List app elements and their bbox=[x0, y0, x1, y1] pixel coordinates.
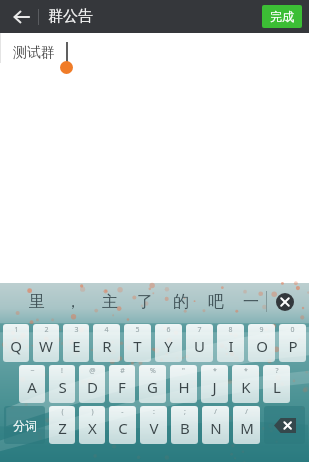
staticText: P bbox=[288, 336, 298, 356]
staticText: # bbox=[120, 366, 125, 376]
button[interactable]: ) bbox=[79, 406, 105, 444]
button[interactable]: Backspace bbox=[264, 406, 305, 444]
staticText: 里 bbox=[29, 292, 45, 312]
staticText: * bbox=[213, 366, 217, 376]
staticText: Z bbox=[58, 418, 67, 438]
staticText: T bbox=[133, 336, 142, 356]
button[interactable]: 5 bbox=[124, 324, 151, 362]
staticText: V bbox=[149, 418, 159, 438]
staticText: A bbox=[27, 377, 37, 397]
button[interactable]: / bbox=[233, 406, 260, 444]
button[interactable]: Close candidates bbox=[276, 293, 294, 311]
button[interactable]: 4 bbox=[93, 324, 120, 362]
staticText: 4 bbox=[104, 325, 109, 335]
staticText: J bbox=[212, 377, 217, 397]
staticText: S bbox=[58, 377, 67, 397]
staticText: K bbox=[241, 377, 251, 397]
button[interactable]: 2 bbox=[33, 324, 59, 362]
staticText: ? bbox=[275, 366, 279, 376]
staticText: Q bbox=[10, 336, 22, 356]
button[interactable]: 分词 bbox=[4, 406, 45, 444]
button[interactable]: * bbox=[232, 365, 259, 403]
staticText: X bbox=[88, 418, 97, 438]
button[interactable]: ? bbox=[263, 365, 290, 403]
staticText: N bbox=[210, 418, 222, 438]
staticText: E bbox=[72, 336, 81, 356]
staticText: ) bbox=[91, 407, 94, 417]
button[interactable]: # bbox=[109, 365, 135, 403]
button[interactable]: ! bbox=[49, 365, 75, 403]
button[interactable]: % bbox=[139, 365, 166, 403]
staticText: 吧 bbox=[208, 292, 224, 312]
button[interactable]: 的 bbox=[168, 289, 194, 315]
staticText: 的 bbox=[173, 292, 189, 312]
staticText: ( bbox=[61, 407, 64, 417]
button[interactable]: 0 bbox=[279, 324, 306, 362]
staticText: 6 bbox=[166, 325, 171, 335]
staticText: G bbox=[147, 377, 158, 397]
button[interactable]: Back bbox=[8, 3, 36, 31]
staticText: W bbox=[39, 336, 53, 356]
staticText: Y bbox=[164, 336, 173, 356]
staticText: F bbox=[118, 377, 126, 397]
staticText: : bbox=[153, 407, 155, 417]
button[interactable]: * bbox=[201, 365, 228, 403]
staticText: 群公告 bbox=[48, 7, 93, 26]
button[interactable]: 了 bbox=[132, 289, 158, 315]
button[interactable]: 8 bbox=[217, 324, 244, 362]
staticText: 测试群 bbox=[13, 44, 55, 62]
staticText: 3 bbox=[74, 325, 79, 335]
button[interactable]: 吧 bbox=[203, 289, 229, 315]
button[interactable]: 6 bbox=[155, 324, 182, 362]
button[interactable]: 主 bbox=[97, 289, 123, 315]
button[interactable]: : bbox=[140, 406, 167, 444]
staticText: 分词 bbox=[13, 418, 37, 433]
staticText: ， bbox=[65, 292, 81, 312]
button[interactable]: 7 bbox=[186, 324, 213, 362]
staticText: O bbox=[256, 336, 268, 356]
button[interactable]: 1 bbox=[3, 324, 29, 362]
staticText: I bbox=[228, 336, 234, 356]
staticText: U bbox=[194, 336, 205, 356]
staticText: " bbox=[182, 366, 185, 376]
button[interactable]: @ bbox=[79, 365, 105, 403]
button[interactable]: 9 bbox=[248, 324, 275, 362]
button[interactable]: 完成 bbox=[262, 5, 302, 28]
staticText: / bbox=[245, 407, 248, 417]
button[interactable]: ~ bbox=[19, 365, 45, 403]
staticText: % bbox=[150, 366, 156, 376]
staticText: ! bbox=[61, 366, 63, 376]
staticText: H bbox=[178, 377, 190, 397]
button[interactable]: / bbox=[202, 406, 229, 444]
staticText: / bbox=[214, 407, 217, 417]
staticText: D bbox=[87, 377, 98, 397]
button[interactable]: 3 bbox=[63, 324, 89, 362]
staticText: C bbox=[118, 418, 128, 438]
staticText: 8 bbox=[228, 325, 233, 335]
button[interactable]: " bbox=[170, 365, 197, 403]
staticText: - bbox=[121, 407, 124, 417]
staticText: 7 bbox=[197, 325, 202, 335]
staticText: 主 bbox=[102, 292, 118, 312]
button[interactable]: 里 bbox=[24, 289, 50, 315]
staticText: R bbox=[102, 336, 112, 356]
button[interactable]: - bbox=[109, 406, 136, 444]
staticText: B bbox=[180, 418, 190, 438]
staticText: 5 bbox=[135, 325, 140, 335]
button[interactable]: 测试群 bbox=[0, 33, 309, 283]
staticText: 一 bbox=[243, 292, 259, 312]
button[interactable]: ( bbox=[49, 406, 75, 444]
staticText: @ bbox=[89, 366, 96, 376]
button[interactable]: 一 bbox=[238, 289, 264, 315]
staticText: * bbox=[244, 366, 248, 376]
staticText: M bbox=[240, 418, 254, 438]
staticText: 2 bbox=[44, 325, 49, 335]
staticText: ~ bbox=[30, 366, 35, 376]
button[interactable]: ; bbox=[171, 406, 198, 444]
staticText: L bbox=[273, 377, 281, 397]
button[interactable]: ， bbox=[60, 289, 86, 315]
staticText: 完成 bbox=[270, 9, 294, 24]
staticText: 0 bbox=[290, 325, 295, 335]
staticText: ; bbox=[184, 407, 186, 417]
staticText: 1 bbox=[14, 325, 19, 335]
